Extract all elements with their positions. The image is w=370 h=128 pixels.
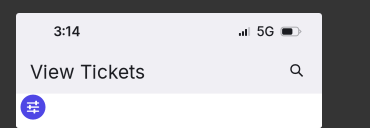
button[interactable]: Search — [284, 58, 312, 86]
button[interactable]: Filters — [20, 95, 45, 120]
staticText: 5G — [256, 24, 274, 39]
staticText: 3:14 — [53, 23, 80, 39]
staticText: View Tickets — [30, 60, 145, 83]
